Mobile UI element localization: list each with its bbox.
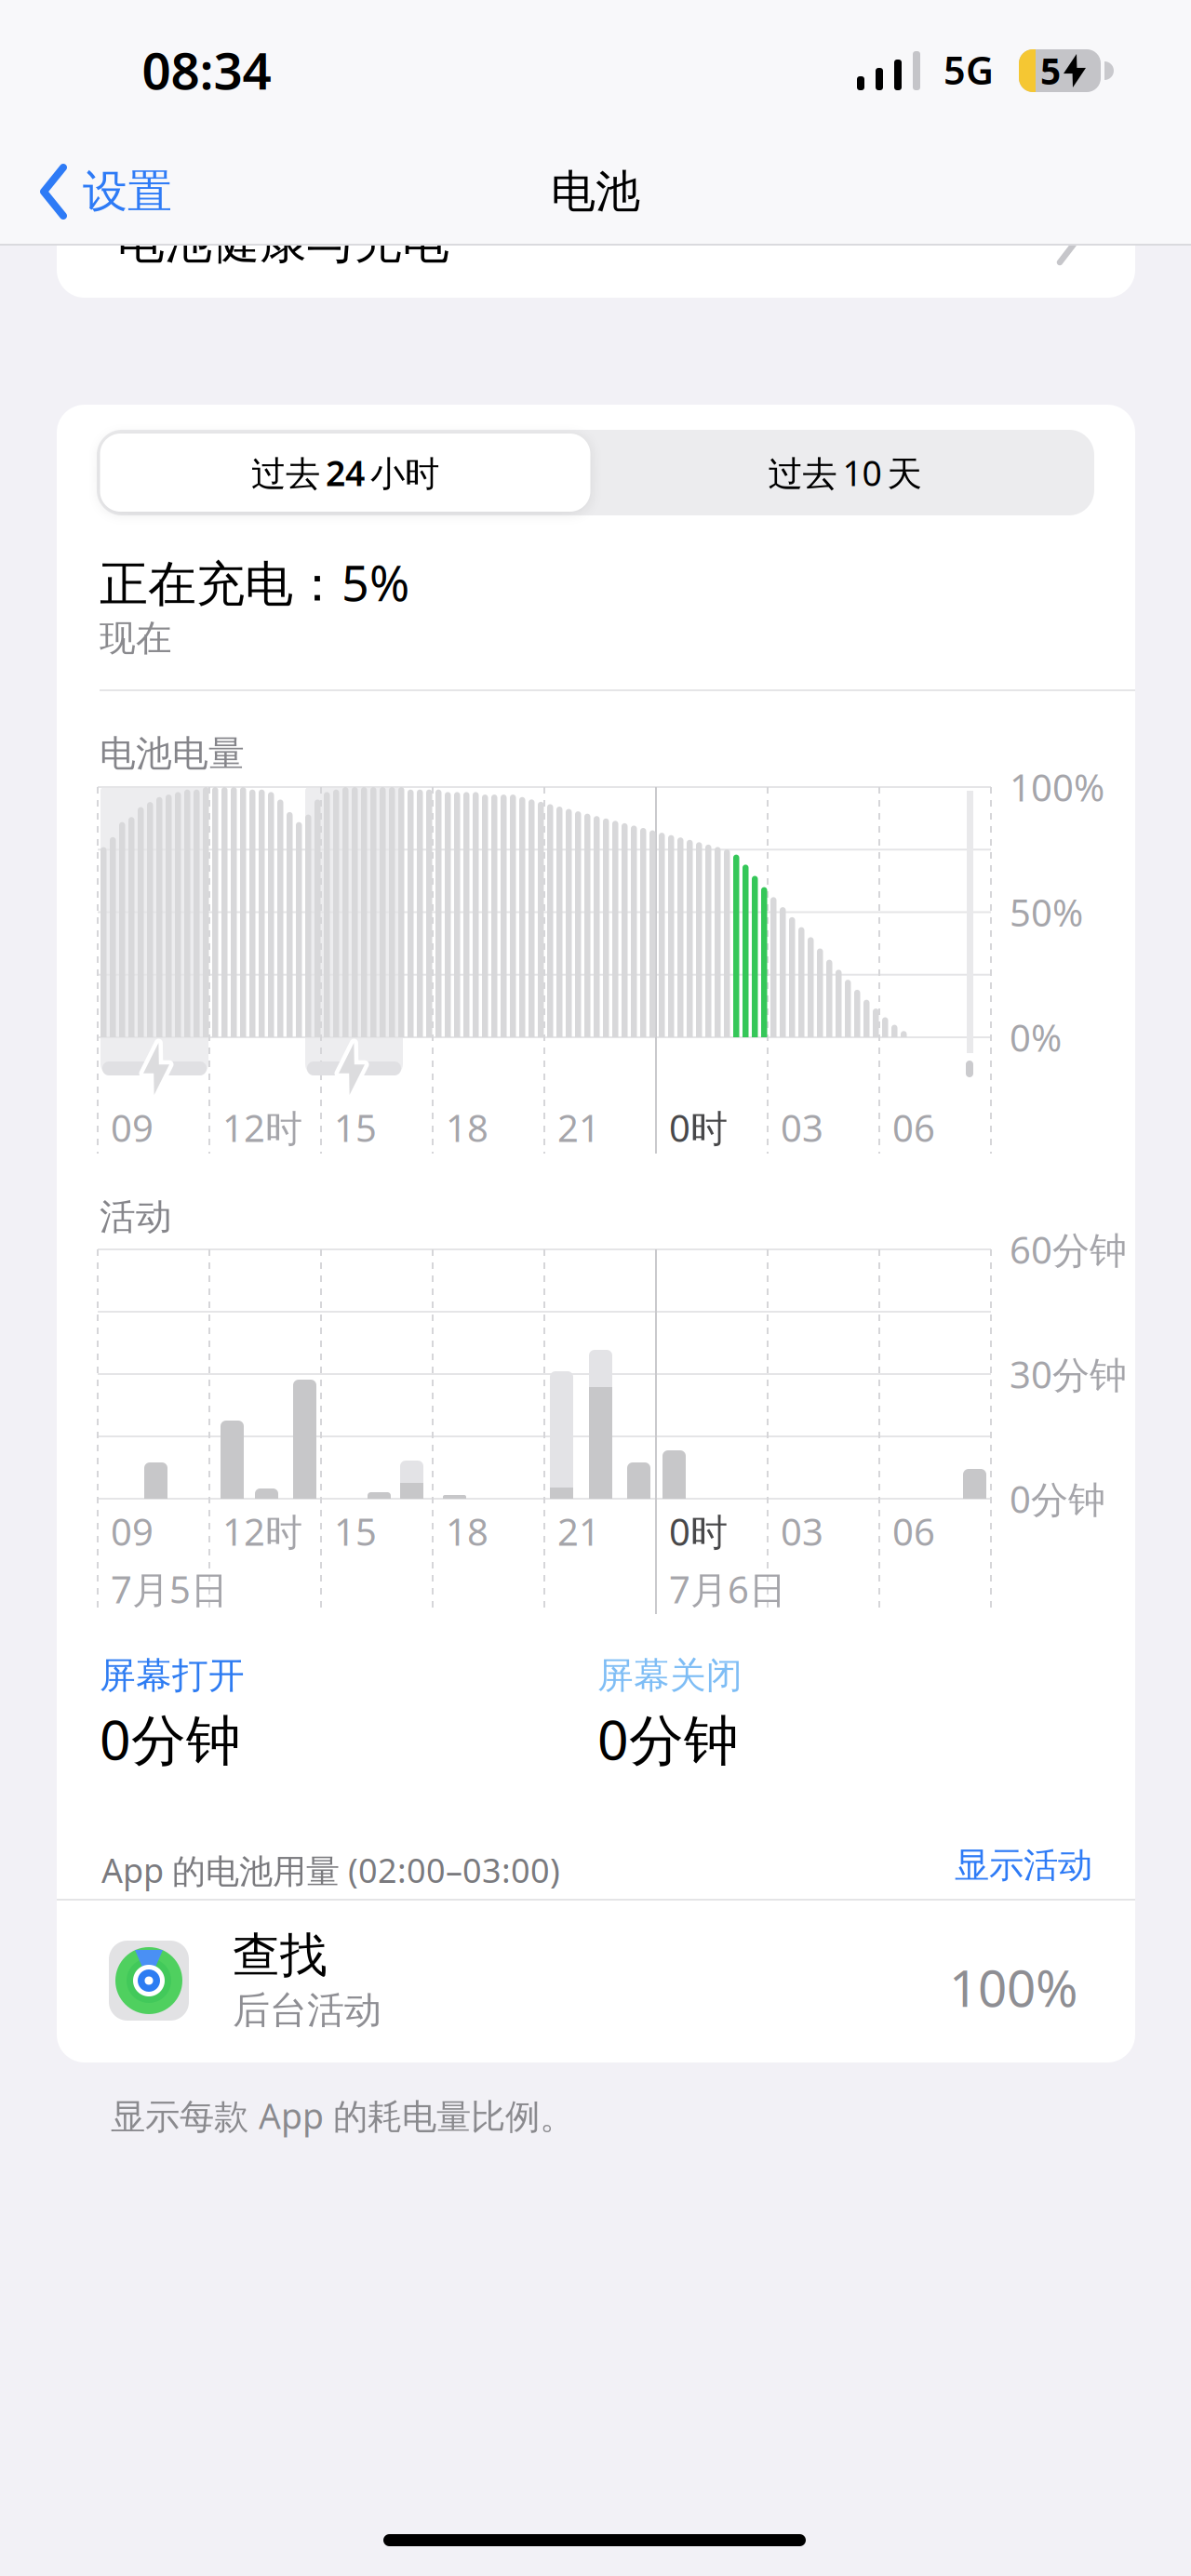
button[interactable]: 过去 24 小时 [100,434,590,512]
staticText: 7月5日 [111,1564,228,1614]
staticText: 正在充电：5% [100,550,409,615]
staticText: 15 [334,1103,377,1152]
staticText: 电池健康与充电 [117,213,449,271]
button[interactable]: 显示活动 [813,1844,1092,1887]
staticText: 0分钟 [1010,1474,1105,1523]
button[interactable]: 电池健康与充电 [57,158,1135,298]
staticText: 12时 [222,1103,302,1152]
staticText: 30分钟 [1010,1349,1127,1399]
staticText: 15 [334,1507,377,1556]
button[interactable]: 查找 [57,1900,1135,2062]
staticText: 0% [1010,1013,1062,1062]
staticText: 09 [111,1103,154,1152]
staticText: 0时 [669,1507,728,1556]
staticText: 06 [892,1103,935,1152]
button[interactable]: 过去 10 天 [603,434,1087,512]
staticText: 06 [892,1507,935,1556]
staticText: 60分钟 [1010,1225,1127,1274]
staticText: 0分钟 [100,1702,241,1775]
staticText: 电池电量 [100,731,245,776]
staticText: 18 [446,1103,488,1152]
staticText: 7月6日 [669,1564,786,1614]
button[interactable]: 设置 [40,164,172,219]
staticText: 过去 24 小时 [251,450,439,496]
staticText: 12时 [222,1507,302,1556]
staticText: 电池 [551,164,640,219]
staticText: 显示每款 App 的耗电量比例。 [111,2092,574,2139]
staticText: 屏幕打开 [100,1653,245,1698]
staticText: 100% [949,1953,1077,2021]
staticText: 0时 [669,1103,728,1152]
staticText: 5G [943,44,994,95]
staticText: 0分钟 [597,1702,739,1775]
staticText: 100% [1010,762,1104,812]
staticText: App 的电池用量 (02:00–03:00) [101,1848,560,1892]
staticText: 查找 [233,1927,328,1984]
staticText: 18 [446,1507,488,1556]
staticText: 08:34 [142,36,271,104]
staticText: 50% [1010,887,1083,937]
staticText: 09 [111,1507,154,1556]
staticText: 21 [557,1507,600,1556]
staticText: 03 [781,1103,823,1152]
staticText: 设置 [83,164,172,219]
staticText: 过去 10 天 [768,450,922,496]
staticText: 显示活动 [955,1844,1092,1887]
staticText: 活动 [100,1195,172,1239]
staticText: 现在 [100,616,172,660]
staticText: 5 [1040,47,1061,95]
staticText: 后台活动 [233,1987,381,2033]
staticText: 03 [781,1507,823,1556]
staticText: 21 [557,1103,600,1152]
staticText: 屏幕关闭 [597,1653,743,1698]
